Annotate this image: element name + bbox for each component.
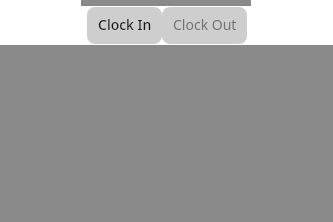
- button[interactable]: Clock Out: [162, 7, 247, 44]
- staticText: Clock In: [98, 15, 152, 34]
- button[interactable]: Clock In: [87, 7, 162, 44]
- staticText: Clock Out: [173, 15, 237, 34]
